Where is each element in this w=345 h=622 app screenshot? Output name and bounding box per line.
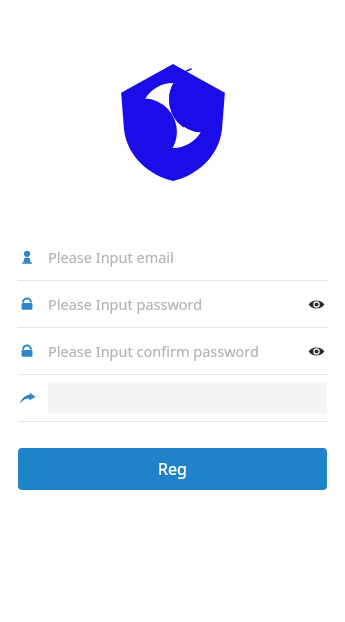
button[interactable] (18, 375, 327, 421)
staticText: Please Input confirm password (48, 341, 259, 361)
other: App logo (116, 64, 230, 181)
button[interactable]: Please Input password (18, 281, 327, 327)
button[interactable]: Please Input confirm password (18, 328, 327, 374)
button[interactable]: Show password (305, 293, 327, 315)
button[interactable]: Show password (305, 340, 327, 362)
button[interactable]: Reg (18, 448, 327, 490)
staticText: Please Input email (48, 247, 174, 267)
staticText: Reg (158, 458, 187, 480)
staticText: Please Input password (48, 294, 203, 314)
button[interactable]: Please Input email (18, 234, 327, 280)
